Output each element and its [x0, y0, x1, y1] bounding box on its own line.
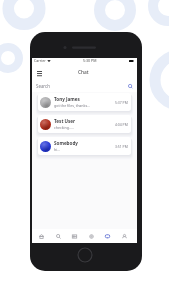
staticText: 3:51 PM	[115, 144, 128, 149]
staticText: checking.....	[54, 125, 74, 130]
staticText: hi...	[54, 147, 61, 152]
button[interactable]: Feed	[68, 230, 81, 243]
staticText: Tony James	[54, 96, 80, 102]
button[interactable]: Somebody	[38, 137, 131, 155]
staticText: Chat	[78, 69, 89, 76]
button[interactable]: Menu	[33, 67, 45, 79]
staticText: 5:30 PM	[83, 58, 97, 63]
button[interactable]: Home	[35, 230, 48, 243]
button[interactable]: Home button	[77, 247, 93, 263]
staticText: Test User	[54, 118, 76, 124]
button[interactable]: Camera	[85, 230, 98, 243]
staticText: Search	[36, 83, 50, 89]
button[interactable]: Search	[32, 80, 137, 92]
staticText: 5:37 PM	[115, 100, 128, 105]
staticText: Somebody	[54, 140, 78, 146]
button[interactable]: Test User	[38, 115, 131, 133]
button[interactable]: Tony James	[38, 93, 131, 111]
button[interactable]: Profile	[118, 230, 131, 243]
button[interactable]: Search	[52, 230, 65, 243]
staticText: 4:04 PM	[115, 122, 128, 127]
button[interactable]: Chat	[101, 230, 114, 243]
staticText: got the files, thanks...	[54, 103, 91, 108]
staticText: Carrier	[34, 58, 46, 63]
